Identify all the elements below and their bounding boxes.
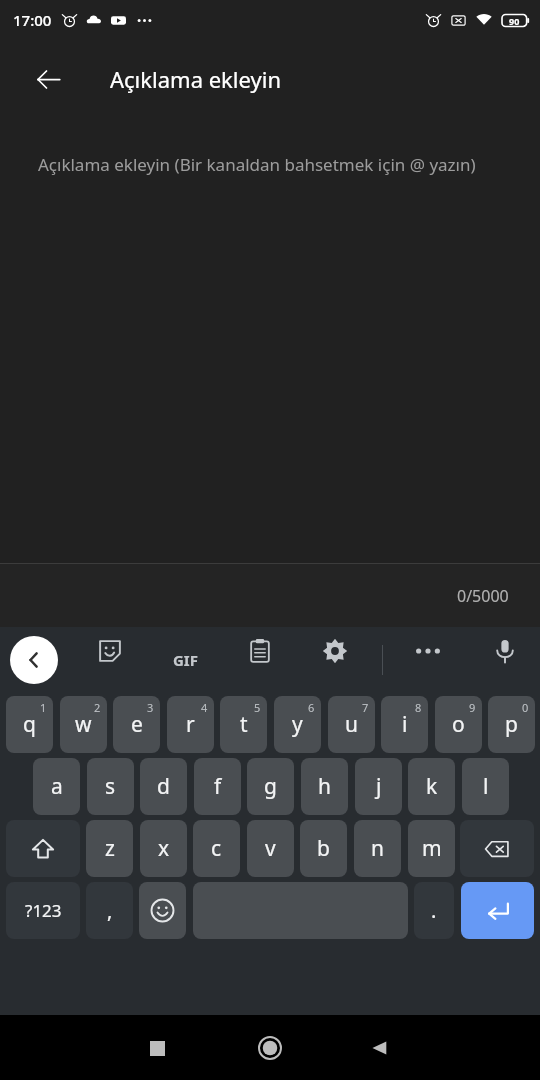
- staticText: h: [318, 772, 331, 801]
- button[interactable]: More options: [404, 627, 452, 675]
- staticText: GIF: [173, 650, 198, 670]
- staticText: w: [75, 710, 92, 739]
- staticText: ,: [107, 897, 113, 924]
- button[interactable]: k: [408, 758, 455, 815]
- button[interactable]: r: [167, 696, 214, 753]
- staticText: l: [483, 772, 489, 801]
- button[interactable]: q: [6, 696, 53, 753]
- button[interactable]: Home: [246, 1024, 294, 1072]
- staticText: Açıklama ekleyin (Bir kanaldan bahsetmek…: [38, 153, 476, 176]
- staticText: 8: [415, 700, 422, 715]
- staticText: r: [186, 710, 195, 739]
- button[interactable]: g: [247, 758, 294, 815]
- button[interactable]: m: [408, 820, 455, 877]
- button[interactable]: s: [87, 758, 134, 815]
- button[interactable]: e: [113, 696, 160, 753]
- staticText: m: [422, 834, 442, 863]
- button[interactable]: j: [355, 758, 402, 815]
- button[interactable]: Enter: [461, 882, 534, 939]
- button[interactable]: y: [274, 696, 321, 753]
- button[interactable]: p: [488, 696, 535, 753]
- staticText: 0: [522, 700, 529, 715]
- button[interactable]: Clipboard: [236, 627, 284, 675]
- staticText: 9: [469, 700, 476, 715]
- button[interactable]: Back: [10, 636, 58, 684]
- staticText: t: [240, 710, 248, 739]
- button[interactable]: Back: [356, 1024, 404, 1072]
- staticText: 17:00: [13, 10, 52, 30]
- button[interactable]: ,: [86, 882, 133, 939]
- staticText: Açıklama ekleyin: [110, 64, 281, 94]
- button[interactable]: n: [354, 820, 401, 877]
- staticText: .: [431, 897, 437, 924]
- staticText: a: [51, 772, 63, 801]
- button[interactable]: .: [414, 882, 454, 939]
- button[interactable]: Backspace: [460, 820, 534, 877]
- staticText: g: [264, 772, 277, 801]
- button[interactable]: GIF: [161, 636, 209, 684]
- button[interactable]: z: [86, 820, 133, 877]
- button[interactable]: Emoji: [139, 882, 186, 939]
- staticText: p: [505, 710, 518, 739]
- staticText: d: [157, 772, 170, 801]
- staticText: c: [211, 834, 222, 863]
- button[interactable]: Shift: [6, 820, 80, 877]
- button[interactable]: u: [328, 696, 375, 753]
- button[interactable]: c: [193, 820, 240, 877]
- staticText: z: [105, 834, 115, 863]
- button[interactable]: v: [247, 820, 294, 877]
- staticText: e: [131, 710, 143, 739]
- staticText: 2: [94, 700, 101, 715]
- staticText: f: [214, 772, 222, 801]
- staticText: y: [292, 710, 303, 739]
- staticText: o: [452, 710, 465, 739]
- staticText: j: [376, 772, 382, 801]
- staticText: 3: [147, 700, 154, 715]
- button[interactable]: Back: [25, 56, 71, 102]
- staticText: ?123: [25, 899, 62, 922]
- button[interactable]: x: [140, 820, 187, 877]
- staticText: 5: [254, 700, 261, 715]
- button[interactable]: b: [300, 820, 347, 877]
- staticText: x: [158, 834, 170, 863]
- button[interactable]: i: [381, 696, 428, 753]
- staticText: 4: [201, 700, 208, 715]
- button[interactable]: Settings: [311, 627, 359, 675]
- staticText: b: [317, 834, 330, 863]
- staticText: k: [426, 772, 438, 801]
- staticText: v: [265, 834, 276, 863]
- button[interactable]: d: [140, 758, 187, 815]
- staticText: u: [345, 710, 358, 739]
- button[interactable]: Recents: [133, 1024, 181, 1072]
- button[interactable]: Voice input: [481, 627, 529, 675]
- staticText: 7: [362, 700, 369, 715]
- staticText: i: [402, 710, 408, 739]
- button[interactable]: h: [301, 758, 348, 815]
- staticText: q: [23, 710, 36, 739]
- staticText: 6: [308, 700, 315, 715]
- staticText: 0/5000: [457, 585, 509, 607]
- button[interactable]: f: [194, 758, 241, 815]
- button[interactable]: t: [220, 696, 267, 753]
- staticText: s: [105, 772, 116, 801]
- button[interactable]: l: [462, 758, 509, 815]
- button[interactable]: a: [33, 758, 80, 815]
- staticText: 90: [509, 15, 520, 27]
- button[interactable]: Sticker: [86, 627, 134, 675]
- button[interactable]: w: [60, 696, 107, 753]
- staticText: n: [371, 834, 384, 863]
- button[interactable]: ?123: [6, 882, 80, 939]
- button[interactable]: o: [435, 696, 482, 753]
- staticText: 1: [40, 700, 47, 715]
